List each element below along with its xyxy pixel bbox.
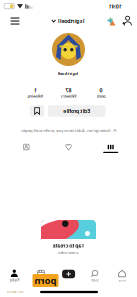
staticText: porn — [80, 274, 102, 287]
button[interactable]: Home — [1, 268, 28, 284]
button[interactable]: Edit profile — [31, 105, 89, 117]
button[interactable]: Posts grid — [11, 141, 41, 153]
button[interactable]: Menu — [114, 14, 130, 28]
button[interactable]: 87 — [52, 87, 84, 98]
staticText: Tap to create — [52, 242, 84, 249]
staticText: lsgirtboell — [59, 71, 79, 76]
staticText: 87 — [65, 87, 71, 94]
staticText: a new video — [58, 250, 78, 255]
staticText: following — [94, 93, 109, 99]
button[interactable]: lsgirtboell — [52, 14, 86, 28]
button[interactable]: 0 — [20, 87, 52, 98]
staticText: Edit profile — [47, 107, 74, 115]
staticText: 0 — [34, 87, 37, 94]
button[interactable]: 1 — [85, 87, 117, 98]
staticText: lsgirtboell — [52, 17, 79, 25]
staticText: 1 — [100, 87, 103, 94]
staticText: Home — [11, 279, 19, 282]
button[interactable]: Tap to create — [41, 220, 96, 258]
button[interactable]: Create — [58, 267, 78, 280]
staticText: followers — [60, 93, 76, 99]
staticText: ® - lleobtrigsl ten - Add a bio to your … — [20, 128, 115, 133]
button[interactable]: Saved — [93, 105, 107, 117]
staticText: Search — [38, 279, 46, 282]
staticText: posts — [31, 93, 40, 99]
button[interactable]: Profile — [109, 268, 136, 284]
button[interactable]: Reels — [82, 268, 109, 284]
staticText: Profile — [118, 279, 128, 282]
button[interactable]: Search — [29, 268, 56, 284]
button[interactable]: Tagged — [96, 141, 126, 153]
staticText: 10:41 — [15, 3, 28, 10]
button[interactable]: Profile photo — [52, 33, 85, 66]
staticText: Reels — [92, 279, 100, 282]
button[interactable]: Discover people — [4, 15, 16, 27]
button[interactable]: Reels — [53, 141, 83, 153]
